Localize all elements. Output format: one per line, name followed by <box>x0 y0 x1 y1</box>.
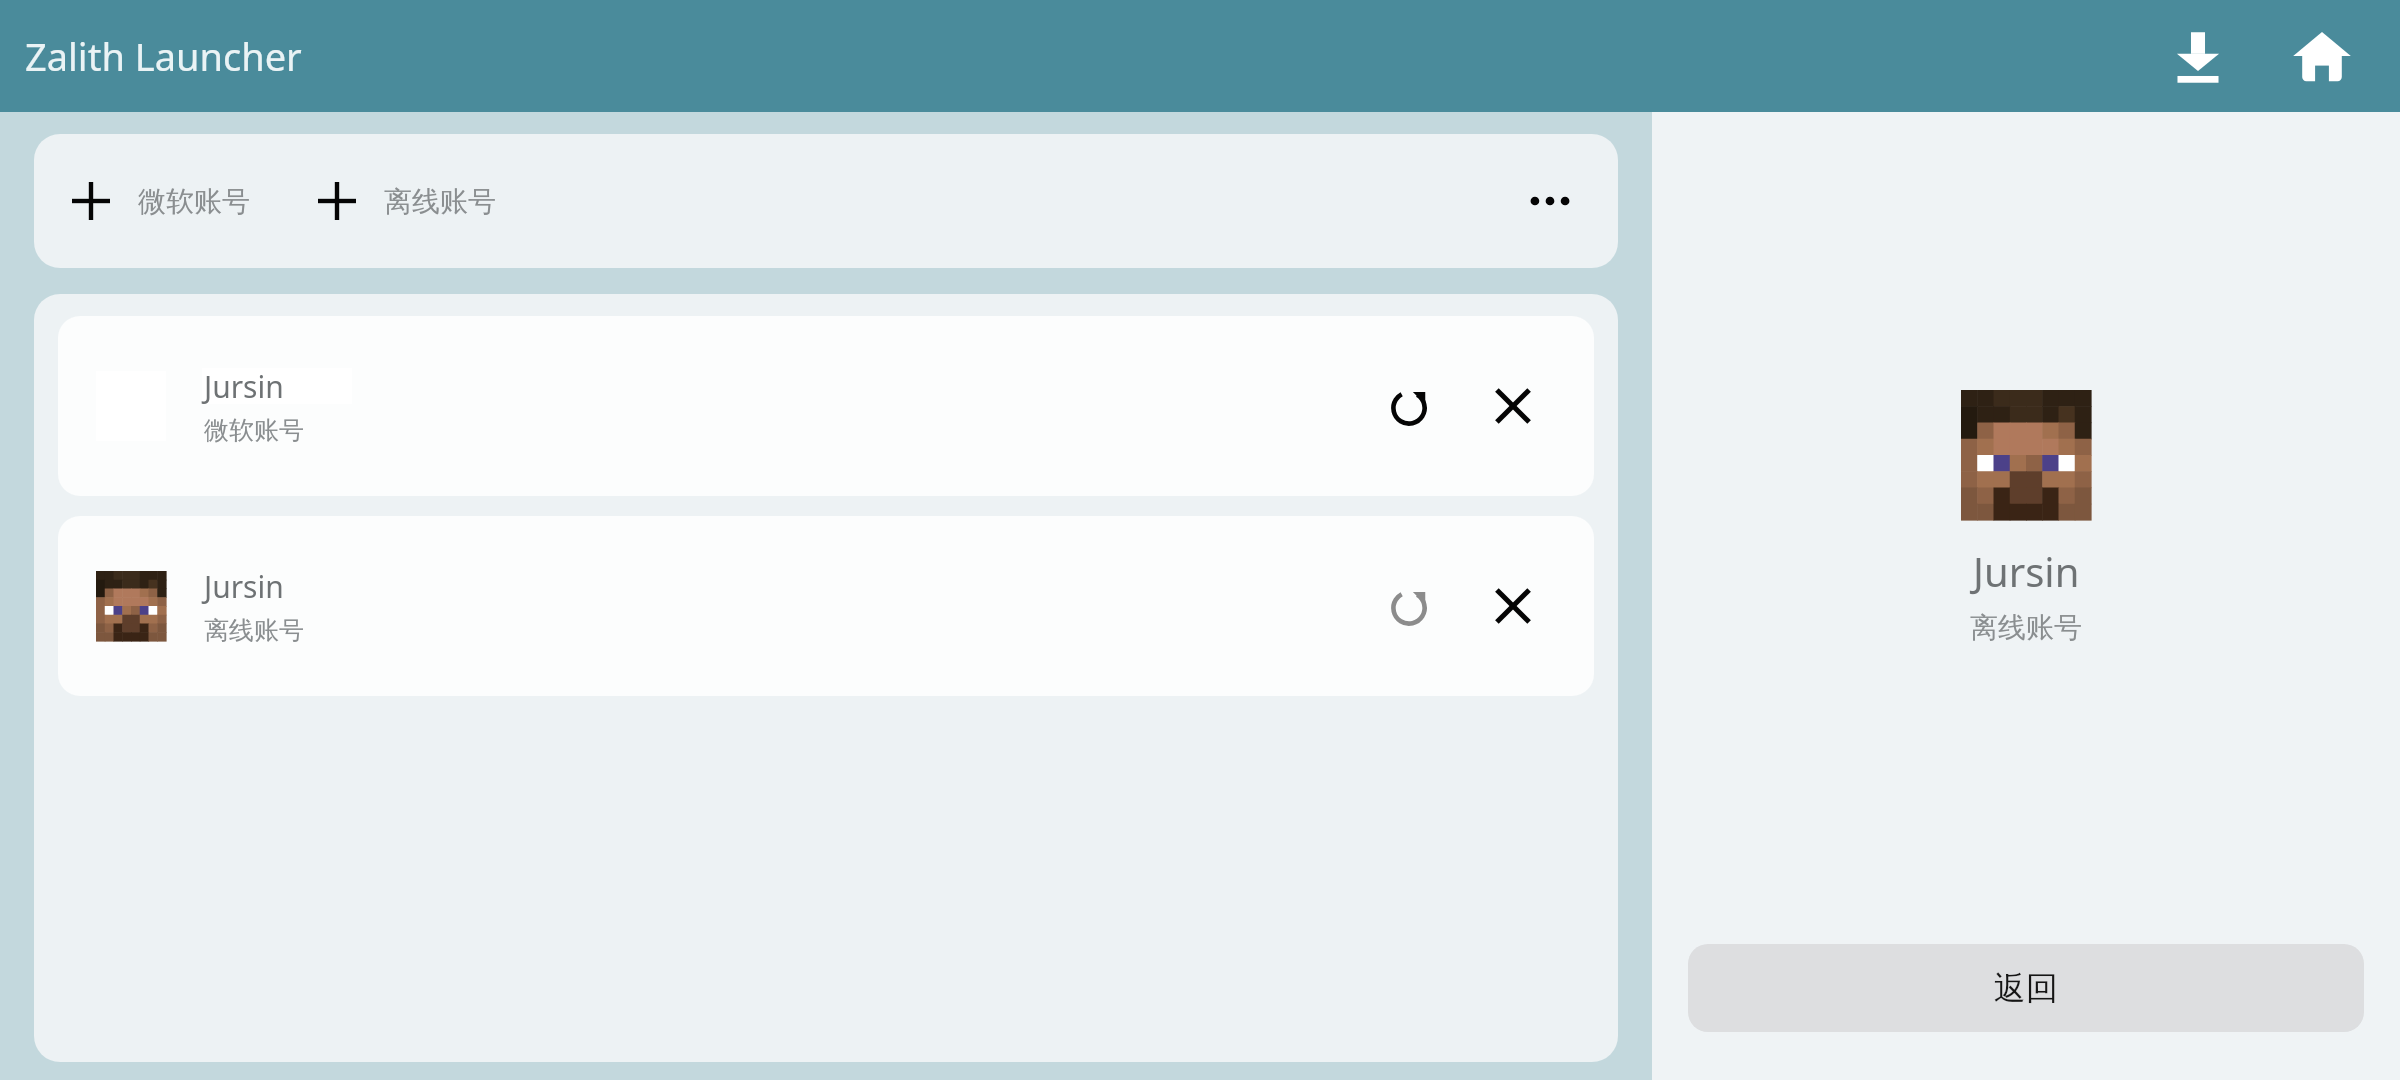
button[interactable]: Refresh <box>1370 367 1448 445</box>
staticText: 返回 <box>1994 968 2058 1008</box>
staticText: 微软账号 <box>138 184 250 219</box>
button[interactable]: 返回 <box>1688 944 2364 1032</box>
button[interactable]: More options <box>1508 159 1592 243</box>
button[interactable]: Jursin <box>58 516 1594 696</box>
staticText: 微软账号 <box>204 415 304 446</box>
staticText: Jursin <box>204 366 284 407</box>
button[interactable]: Downloads <box>2150 8 2246 104</box>
button[interactable]: Remove account <box>1474 567 1552 645</box>
staticText: Jursin <box>1973 544 2080 598</box>
button[interactable]: Refresh <box>1370 567 1448 645</box>
staticText: Zalith Launcher <box>25 30 302 82</box>
staticText: Jursin <box>204 566 284 607</box>
button[interactable]: 微软账号 <box>60 172 262 230</box>
button[interactable]: 离线账号 <box>306 172 508 230</box>
button[interactable]: Jursin <box>58 316 1594 496</box>
staticText: 离线账号 <box>384 184 496 219</box>
staticText: 离线账号 <box>1970 610 2082 645</box>
button[interactable]: Remove account <box>1474 367 1552 445</box>
button[interactable]: Home <box>2274 8 2370 104</box>
staticText: 离线账号 <box>204 615 304 646</box>
